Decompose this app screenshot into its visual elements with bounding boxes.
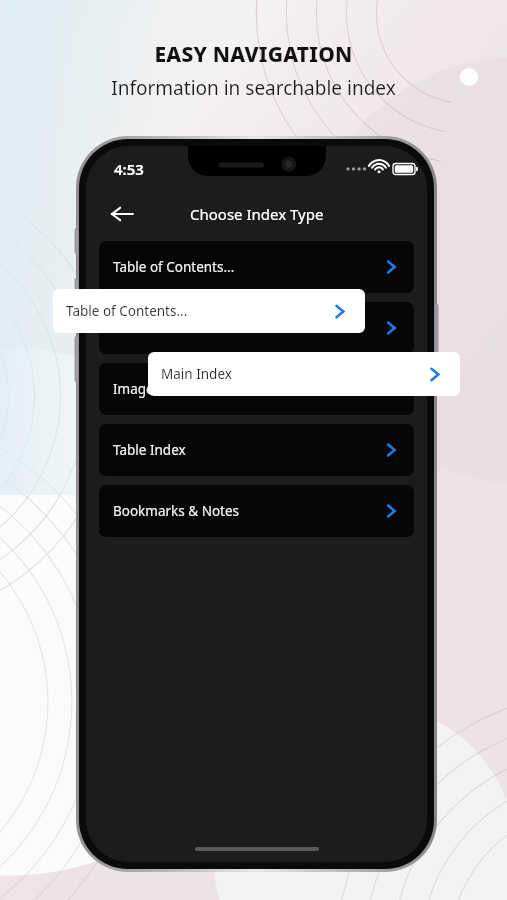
- button[interactable]: Bookmarks & Notes: [99, 485, 414, 537]
- staticText: Table of Contents...: [113, 258, 235, 276]
- button[interactable]: Back: [100, 192, 144, 236]
- button[interactable]: Image Index: [99, 363, 414, 415]
- button[interactable]: Main Index: [148, 352, 460, 396]
- staticText: Bookmarks & Notes: [113, 502, 240, 520]
- staticText: 4:53: [114, 159, 144, 179]
- button[interactable]: [99, 302, 414, 354]
- staticText: Main Index: [161, 365, 232, 383]
- staticText: Table Index: [113, 441, 186, 459]
- staticText: Choose Index Type: [190, 204, 324, 224]
- staticText: EASY NAVIGATION: [154, 40, 353, 69]
- staticText: Table of Contents...: [66, 302, 188, 320]
- staticText: Image Index: [113, 380, 193, 398]
- button[interactable]: Table of Contents...: [53, 289, 365, 333]
- button[interactable]: Table of Contents...: [99, 241, 414, 293]
- button[interactable]: Table Index: [99, 424, 414, 476]
- staticText: Information in searchable index: [111, 75, 396, 101]
